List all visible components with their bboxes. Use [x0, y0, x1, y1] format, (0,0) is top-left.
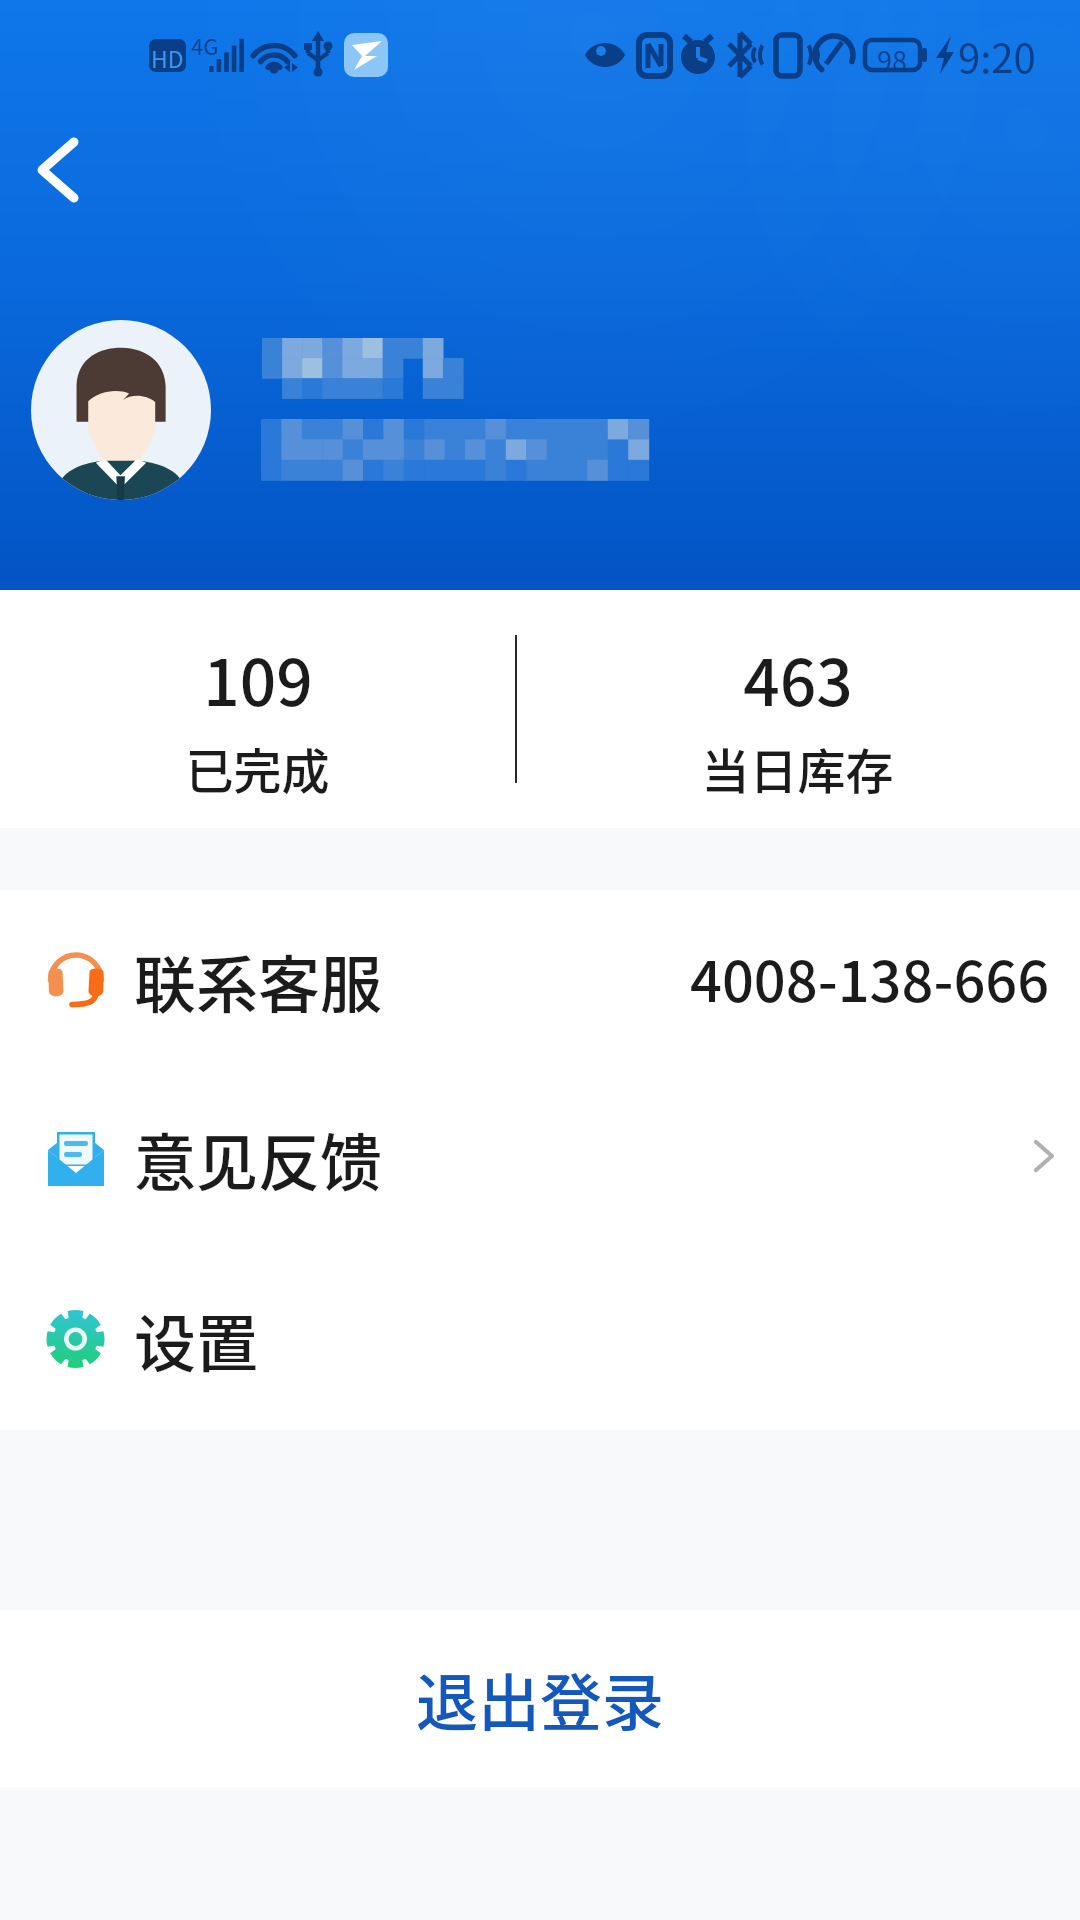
- staticText: 9:20: [958, 27, 1036, 85]
- button[interactable]: 意见反馈: [0, 1084, 1080, 1234]
- button[interactable]: 退出登录: [0, 1610, 1080, 1787]
- staticText: 意见反馈: [134, 1114, 383, 1204]
- staticText: 463: [743, 632, 853, 725]
- staticText: HD: [151, 41, 184, 74]
- staticText: 4008-138-666: [690, 937, 1050, 1018]
- button[interactable]: Back: [8, 120, 108, 220]
- staticText: 联系客服: [134, 936, 383, 1026]
- staticText: 109: [203, 632, 313, 725]
- button[interactable]: 联系客服: [0, 906, 1080, 1056]
- button[interactable]: 设置: [0, 1265, 1080, 1415]
- staticText: 退出登录: [416, 1654, 665, 1744]
- button[interactable]: 463: [515, 590, 1080, 828]
- button[interactable]: 109: [0, 590, 515, 828]
- staticText: 4G: [191, 29, 219, 61]
- staticText: 98: [877, 40, 907, 79]
- staticText: 设置: [134, 1295, 259, 1385]
- staticText: 当日库存: [701, 733, 894, 803]
- staticText: 已完成: [185, 733, 330, 803]
